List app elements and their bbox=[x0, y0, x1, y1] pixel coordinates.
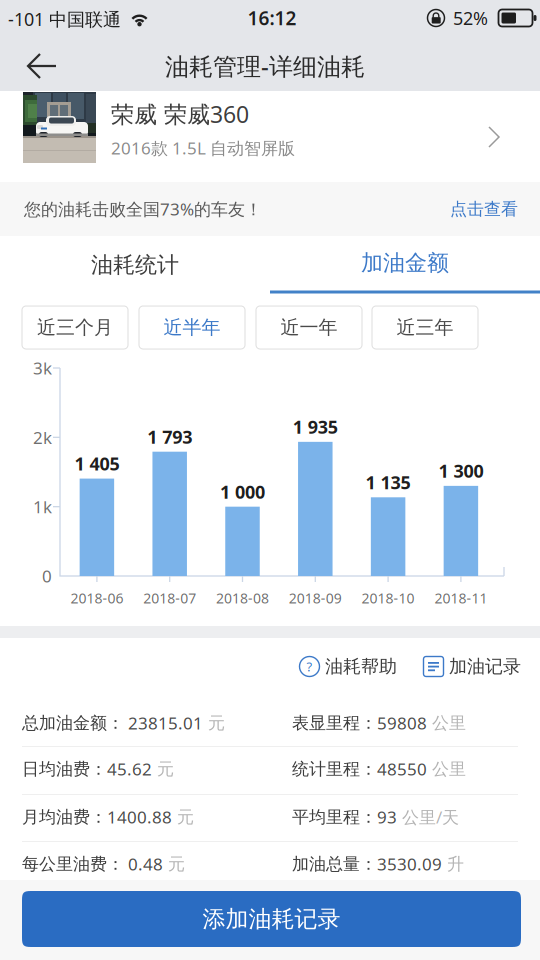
staticText: 近半年 bbox=[163, 315, 220, 339]
button[interactable]: 油耗统计 bbox=[0, 236, 270, 294]
staticText: 元 bbox=[163, 853, 185, 875]
staticText: 1 000 bbox=[220, 479, 265, 504]
staticText: 16:12 bbox=[247, 5, 296, 31]
staticText: 统计里程： bbox=[292, 758, 377, 780]
staticText: 59808 bbox=[377, 711, 427, 735]
staticText: ? bbox=[306, 658, 312, 675]
staticText: 1 793 bbox=[147, 424, 192, 449]
staticText: 升 bbox=[442, 853, 464, 875]
staticText: 点击查看 bbox=[450, 198, 518, 220]
staticText: 加油记录 bbox=[449, 655, 521, 678]
staticText: 1400.88 bbox=[107, 805, 172, 829]
button[interactable]: 点击查看 bbox=[380, 197, 518, 221]
button[interactable]: 近三个月 bbox=[22, 306, 128, 349]
staticText: 2018-11 bbox=[434, 588, 487, 608]
button[interactable]: 加油记录 bbox=[423, 655, 526, 678]
staticText: 2016款 1.5L 自动智屏版 bbox=[111, 136, 295, 160]
staticText: 1 300 bbox=[438, 459, 483, 483]
staticText: 油耗帮助 bbox=[325, 655, 397, 678]
staticText: 公里 bbox=[427, 712, 466, 734]
staticText: 2018-07 bbox=[143, 588, 196, 608]
staticText: 2k bbox=[33, 426, 52, 449]
staticText: 表显里程： bbox=[292, 712, 377, 734]
staticText: 2018-08 bbox=[216, 588, 269, 608]
staticText: 1 935 bbox=[293, 415, 338, 439]
staticText: 93 bbox=[377, 805, 397, 829]
staticText: 元 bbox=[152, 758, 174, 780]
button[interactable]: 添加油耗记录 bbox=[22, 891, 521, 947]
staticText: 月均油费： bbox=[22, 806, 107, 828]
staticText: 1 135 bbox=[366, 470, 411, 494]
button[interactable]: 荣威 荣威360 bbox=[0, 91, 540, 182]
button[interactable]: 近半年 bbox=[139, 306, 245, 349]
staticText: 公里 bbox=[427, 758, 466, 780]
staticText: 3530.09 bbox=[377, 852, 442, 876]
staticText: 0 bbox=[42, 564, 52, 588]
staticText: 23815.01 bbox=[124, 711, 203, 735]
staticText: 52% bbox=[453, 6, 488, 30]
staticText: -101 中国联通 bbox=[8, 7, 121, 31]
staticText: 元 bbox=[203, 712, 225, 734]
staticText: 荣威 荣威360 bbox=[111, 98, 249, 130]
staticText: 加油金额 bbox=[361, 249, 449, 277]
staticText: 近三年 bbox=[396, 315, 453, 339]
staticText: 近一年 bbox=[280, 315, 337, 339]
button[interactable]: ? bbox=[299, 655, 402, 678]
staticText: 2018-06 bbox=[70, 588, 123, 608]
staticText: 48550 bbox=[377, 757, 427, 781]
staticText: 每公里油费： bbox=[22, 853, 124, 875]
staticText: 添加油耗记录 bbox=[202, 904, 340, 933]
button[interactable]: 加油金额 bbox=[270, 236, 540, 294]
button[interactable]: 近一年 bbox=[256, 306, 362, 349]
staticText: 近三个月 bbox=[37, 315, 113, 339]
staticText: 元 bbox=[172, 806, 194, 828]
staticText: 日均油费： bbox=[22, 758, 107, 780]
staticText: 总加油金额： bbox=[22, 712, 124, 734]
staticText: 0.48 bbox=[124, 852, 163, 876]
button[interactable]: 返回 bbox=[14, 46, 70, 86]
staticText: 2018-09 bbox=[289, 588, 342, 608]
staticText: 油耗统计 bbox=[91, 251, 179, 279]
staticText: 1k bbox=[33, 495, 52, 518]
staticText: 1 405 bbox=[74, 451, 119, 476]
staticText: 2018-10 bbox=[362, 588, 415, 608]
staticText: 公里/天 bbox=[397, 805, 459, 829]
staticText: 3k bbox=[33, 356, 52, 380]
staticText: 加油总量： bbox=[292, 853, 377, 875]
staticText: 您的油耗击败全国73%的车友！ bbox=[24, 197, 262, 221]
staticText: 油耗管理-详细油耗 bbox=[165, 50, 365, 82]
staticText: 平均里程： bbox=[292, 806, 377, 828]
staticText: 45.62 bbox=[107, 757, 152, 781]
button[interactable]: 近三年 bbox=[372, 306, 478, 349]
